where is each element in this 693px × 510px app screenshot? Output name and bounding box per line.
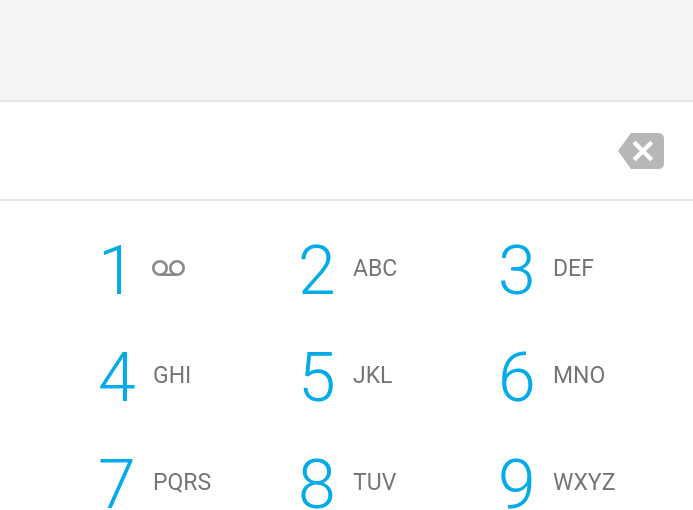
button[interactable]: 6 xyxy=(462,325,693,432)
button[interactable]: 2 xyxy=(231,218,462,325)
staticText: 3 xyxy=(498,231,536,311)
button[interactable]: 7 xyxy=(0,432,231,510)
staticText: 5 xyxy=(298,338,336,418)
button[interactable]: 1 xyxy=(0,218,231,325)
button[interactable]: 4 xyxy=(0,325,231,432)
staticText: 9 xyxy=(498,445,536,510)
staticText: MNO xyxy=(553,362,606,389)
button[interactable]: Backspace xyxy=(609,119,673,183)
staticText: PQRS xyxy=(153,469,212,496)
staticText: 4 xyxy=(98,338,136,418)
button[interactable]: 8 xyxy=(231,432,462,510)
button[interactable]: 5 xyxy=(231,325,462,432)
button[interactable]: 3 xyxy=(462,218,693,325)
staticText: 7 xyxy=(98,445,136,510)
staticText: ABC xyxy=(353,255,398,282)
staticText: 6 xyxy=(498,338,536,418)
staticText: DEF xyxy=(553,255,594,282)
staticText: JKL xyxy=(353,362,393,389)
staticText: 1 xyxy=(98,231,136,311)
staticText: TUV xyxy=(353,469,397,496)
staticText: 2 xyxy=(298,231,336,311)
staticText: GHI xyxy=(153,362,192,389)
staticText: 8 xyxy=(298,445,336,510)
staticText: WXYZ xyxy=(553,469,616,496)
button[interactable]: 9 xyxy=(462,432,693,510)
